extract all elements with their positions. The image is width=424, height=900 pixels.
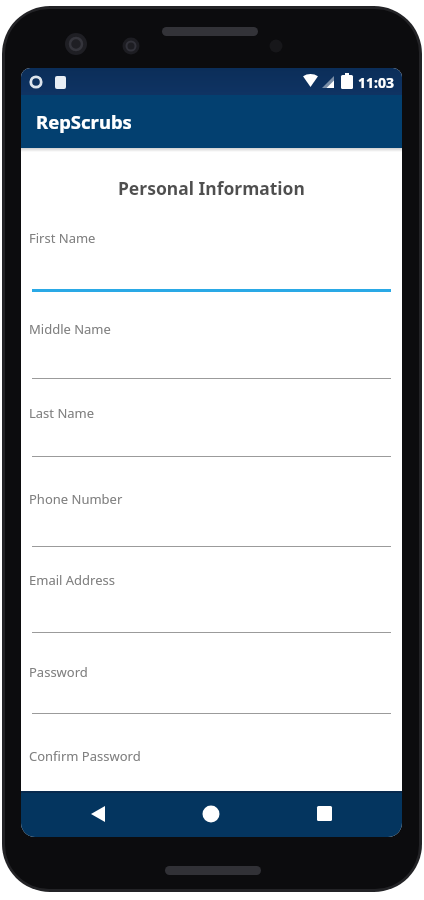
staticText: Middle Name (29, 320, 111, 338)
button[interactable] (29, 394, 395, 460)
button[interactable] (191, 794, 231, 834)
button[interactable] (304, 794, 344, 834)
staticText: Confirm Password (29, 747, 141, 765)
button[interactable] (71, 794, 111, 834)
button[interactable] (29, 480, 395, 546)
button[interactable] (29, 737, 395, 803)
staticText: Personal Information (118, 176, 305, 200)
staticText: Email Address (29, 571, 115, 589)
button[interactable] (29, 561, 395, 627)
button[interactable] (29, 219, 395, 285)
staticText: RepScrubs (36, 109, 132, 134)
staticText: Last Name (29, 404, 95, 422)
staticText: First Name (29, 229, 96, 247)
staticText: Password (29, 663, 88, 681)
button[interactable] (29, 310, 395, 376)
button[interactable] (29, 653, 395, 719)
staticText: 11:03 (358, 73, 394, 92)
staticText: Phone Number (29, 490, 123, 508)
